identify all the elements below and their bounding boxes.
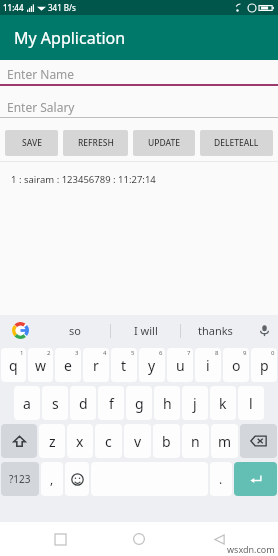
button[interactable]: Recent apps: [40, 522, 80, 556]
staticText: i: [206, 356, 210, 375]
button[interactable]: w: [28, 348, 53, 382]
staticText: ?123: [9, 472, 31, 486]
button[interactable]: Emoji: [65, 462, 89, 496]
button[interactable]: 1 : sairam : 123456789 : 11:27:14: [0, 171, 278, 188]
button[interactable]: c: [95, 424, 122, 458]
staticText: 1 : sairam : 123456789 : 11:27:14: [11, 173, 156, 186]
staticText: f: [109, 394, 114, 413]
staticText: I will: [134, 323, 158, 338]
button[interactable]: Shift: [1, 424, 37, 458]
staticText: w: [35, 356, 47, 375]
staticText: z: [49, 432, 56, 451]
button[interactable]: z: [39, 424, 65, 458]
button[interactable]: y: [139, 348, 165, 382]
staticText: j: [193, 394, 197, 413]
staticText: 3: [75, 349, 79, 357]
button[interactable]: v: [124, 424, 151, 458]
button[interactable]: m: [211, 424, 238, 458]
staticText: u: [176, 356, 185, 375]
button[interactable]: .: [210, 462, 232, 496]
button[interactable]: x: [67, 424, 93, 458]
staticText: UPDATE: [148, 137, 180, 149]
staticText: 1: [20, 349, 24, 357]
button[interactable]: Back: [199, 522, 239, 556]
staticText: l: [249, 394, 253, 413]
staticText: b: [162, 432, 171, 451]
button[interactable]: g: [126, 386, 152, 420]
button[interactable]: SAVE: [5, 130, 58, 156]
button[interactable]: UPDATE: [133, 130, 195, 156]
staticText: x: [76, 432, 84, 451]
button[interactable]: e: [55, 348, 81, 382]
staticText: SAVE: [22, 137, 42, 149]
staticText: h: [163, 394, 172, 413]
button[interactable]: f: [98, 386, 124, 420]
staticText: d: [79, 394, 88, 413]
staticText: REFRESH: [78, 137, 114, 149]
button[interactable]: k: [210, 386, 236, 420]
staticText: My Application: [14, 27, 126, 49]
staticText: o: [232, 356, 241, 375]
button[interactable]: j: [182, 386, 208, 420]
staticText: Enter Salary: [7, 99, 75, 115]
staticText: r: [93, 356, 99, 375]
staticText: ,: [50, 471, 54, 487]
staticText: 9: [243, 349, 247, 357]
staticText: 0: [271, 349, 275, 357]
staticText: 6: [159, 349, 163, 357]
button[interactable]: u: [167, 348, 193, 382]
button[interactable]: o: [223, 348, 249, 382]
button[interactable]: b: [153, 424, 180, 458]
staticText: g: [135, 394, 144, 413]
staticText: thanks: [198, 323, 233, 338]
staticText: 8: [215, 349, 219, 357]
button[interactable]: Voice input: [250, 315, 278, 346]
button[interactable]: h: [154, 386, 180, 420]
button[interactable]: n: [182, 424, 209, 458]
button[interactable]: q: [1, 348, 26, 382]
staticText: wsxdn.com: [227, 543, 275, 555]
button[interactable]: s: [42, 386, 68, 420]
staticText: a: [23, 394, 31, 413]
staticText: 11:44: [3, 2, 24, 13]
button[interactable]: i: [195, 348, 221, 382]
staticText: t: [121, 356, 127, 375]
button[interactable]: r: [83, 348, 109, 382]
button[interactable]: t: [111, 348, 137, 382]
button[interactable]: REFRESH: [63, 130, 128, 156]
button[interactable]: ,: [41, 462, 63, 496]
staticText: DELETEALL: [214, 137, 259, 149]
staticText: 7: [187, 349, 191, 357]
button[interactable]: thanks: [181, 315, 250, 346]
staticText: v: [134, 432, 142, 451]
staticText: p: [260, 356, 269, 375]
staticText: m: [218, 432, 232, 451]
staticText: k: [219, 394, 227, 413]
button[interactable]: I will: [111, 315, 180, 346]
button[interactable]: l: [238, 386, 264, 420]
button[interactable]: Enter Salary: [0, 97, 278, 118]
button[interactable]: so: [40, 315, 110, 346]
staticText: Enter Name: [7, 66, 75, 82]
button[interactable]: DELETEALL: [200, 130, 273, 156]
staticText: e: [64, 356, 72, 375]
button[interactable]: ?123: [1, 462, 39, 496]
staticText: c: [105, 432, 112, 451]
staticText: s: [52, 394, 59, 413]
staticText: q: [9, 356, 18, 375]
staticText: 4: [103, 349, 107, 357]
button[interactable]: Backspace: [240, 424, 277, 458]
staticText: 341 B/s: [48, 2, 76, 13]
button[interactable]: d: [70, 386, 96, 420]
button[interactable]: a: [14, 386, 40, 420]
button[interactable]: p: [251, 348, 277, 382]
button[interactable]: Enter Name: [0, 64, 278, 86]
staticText: n: [191, 432, 200, 451]
staticText: 2: [47, 349, 51, 357]
staticText: y: [148, 356, 156, 375]
button[interactable]: Enter: [234, 462, 277, 496]
button[interactable]: Home: [119, 522, 159, 556]
button[interactable]: Google: [0, 315, 40, 346]
staticText: .: [219, 471, 223, 487]
